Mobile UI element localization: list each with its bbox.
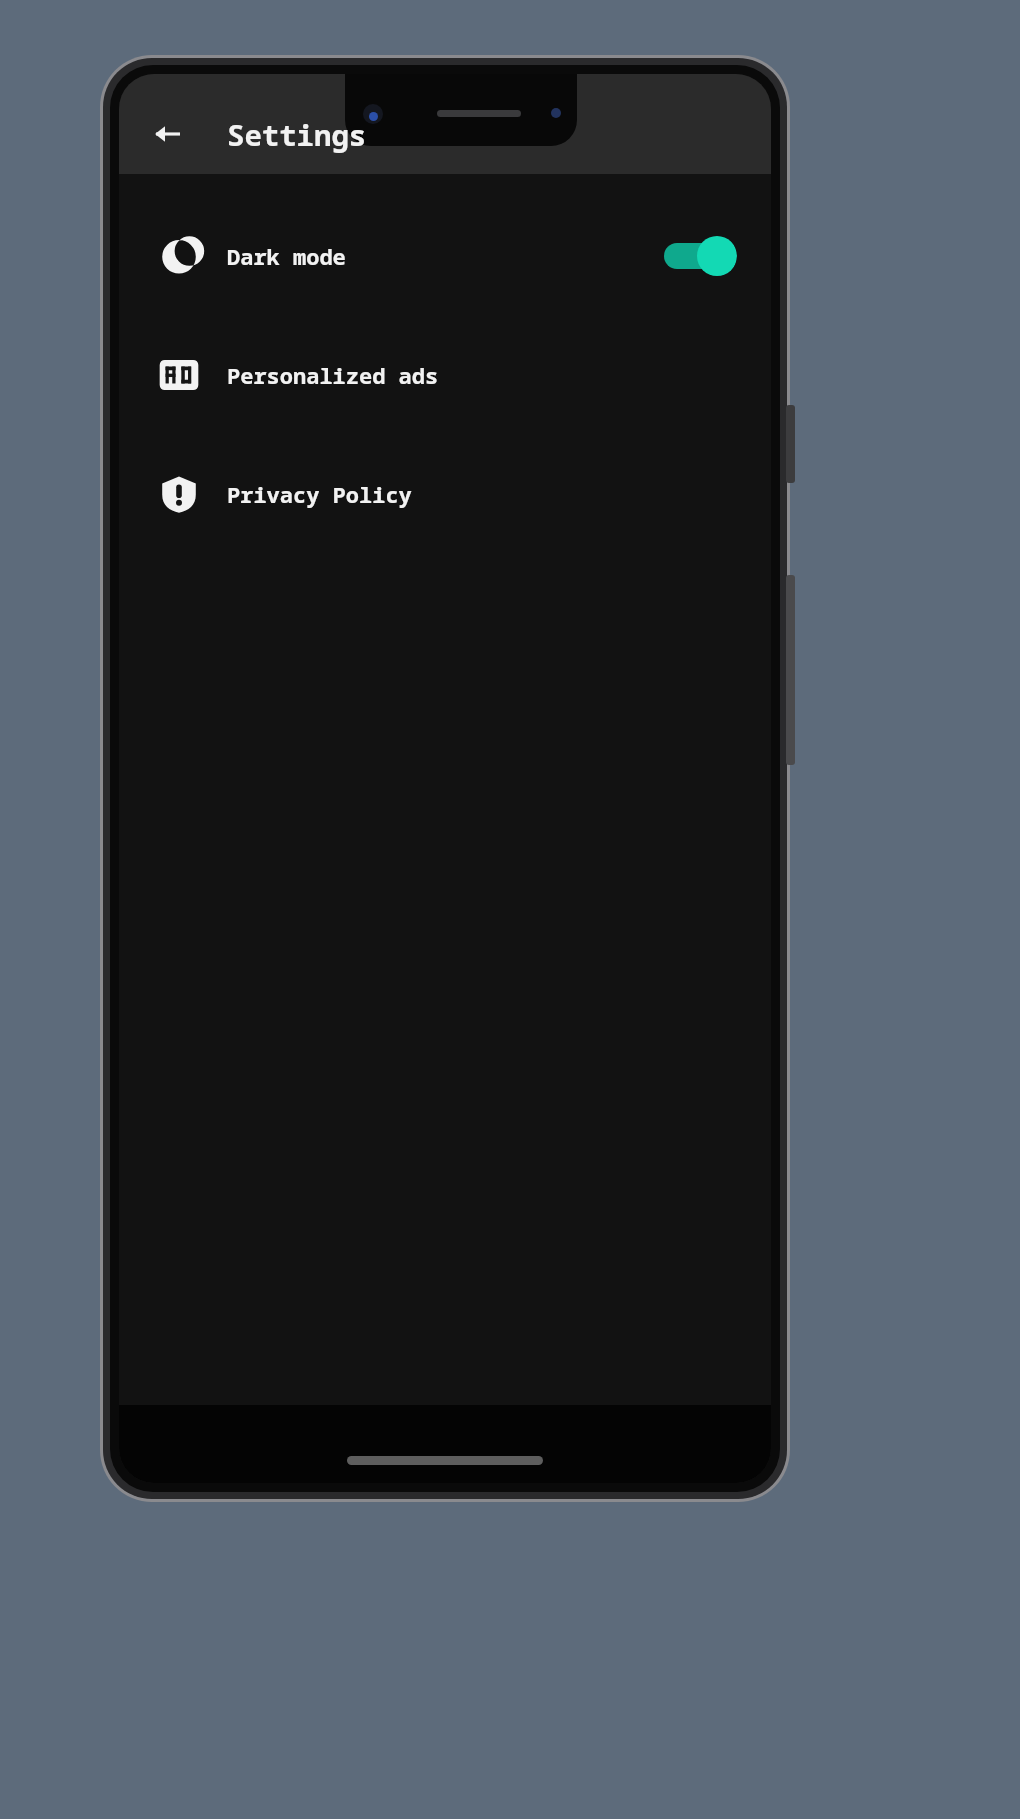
button[interactable]: Personalized ads bbox=[119, 315, 771, 434]
button[interactable]: Dark mode bbox=[119, 196, 771, 315]
button[interactable]: Back bbox=[139, 105, 197, 163]
staticText: Settings bbox=[227, 115, 367, 154]
staticText: Dark mode bbox=[227, 241, 346, 271]
staticText: Privacy Policy bbox=[227, 479, 412, 509]
staticText: Personalized ads bbox=[227, 360, 439, 390]
button[interactable]: Privacy Policy bbox=[119, 434, 771, 553]
button[interactable]: Dark mode toggle bbox=[661, 234, 737, 278]
